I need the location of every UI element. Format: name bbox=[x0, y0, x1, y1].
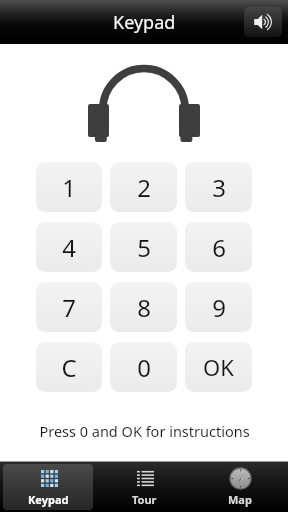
button[interactable]: 4 bbox=[36, 222, 102, 272]
button[interactable]: 5 bbox=[110, 222, 177, 272]
button[interactable]: 1 bbox=[36, 162, 102, 212]
staticText: 4 bbox=[62, 231, 76, 264]
button[interactable]: 3 bbox=[185, 162, 252, 212]
button[interactable]: Map bbox=[195, 464, 285, 510]
button[interactable]: Keypad bbox=[3, 464, 93, 510]
staticText: 5 bbox=[137, 231, 151, 264]
button[interactable]: 9 bbox=[185, 282, 252, 332]
staticText: Tour bbox=[132, 492, 157, 507]
staticText: 8 bbox=[137, 291, 151, 324]
staticText: 6 bbox=[212, 231, 226, 264]
button[interactable]: 0 bbox=[110, 342, 177, 392]
staticText: C bbox=[61, 351, 77, 384]
staticText: 2 bbox=[137, 171, 151, 204]
staticText: Press 0 and OK for instructions bbox=[39, 421, 250, 441]
button[interactable]: Sound bbox=[244, 7, 282, 37]
button[interactable]: 6 bbox=[185, 222, 252, 272]
staticText: OK bbox=[203, 352, 234, 382]
staticText: 7 bbox=[62, 291, 76, 324]
button[interactable]: 2 bbox=[110, 162, 177, 212]
button[interactable]: OK bbox=[185, 342, 252, 392]
button[interactable]: 8 bbox=[110, 282, 177, 332]
button[interactable]: Tour bbox=[99, 464, 189, 510]
staticText: 1 bbox=[62, 171, 76, 204]
staticText: Map bbox=[228, 492, 252, 507]
button[interactable]: 7 bbox=[36, 282, 102, 332]
button[interactable]: C bbox=[36, 342, 102, 392]
staticText: 3 bbox=[212, 171, 226, 204]
staticText: Keypad bbox=[28, 492, 69, 507]
staticText: 9 bbox=[212, 291, 226, 324]
staticText: Keypad bbox=[113, 10, 176, 35]
staticText: 0 bbox=[137, 351, 151, 384]
